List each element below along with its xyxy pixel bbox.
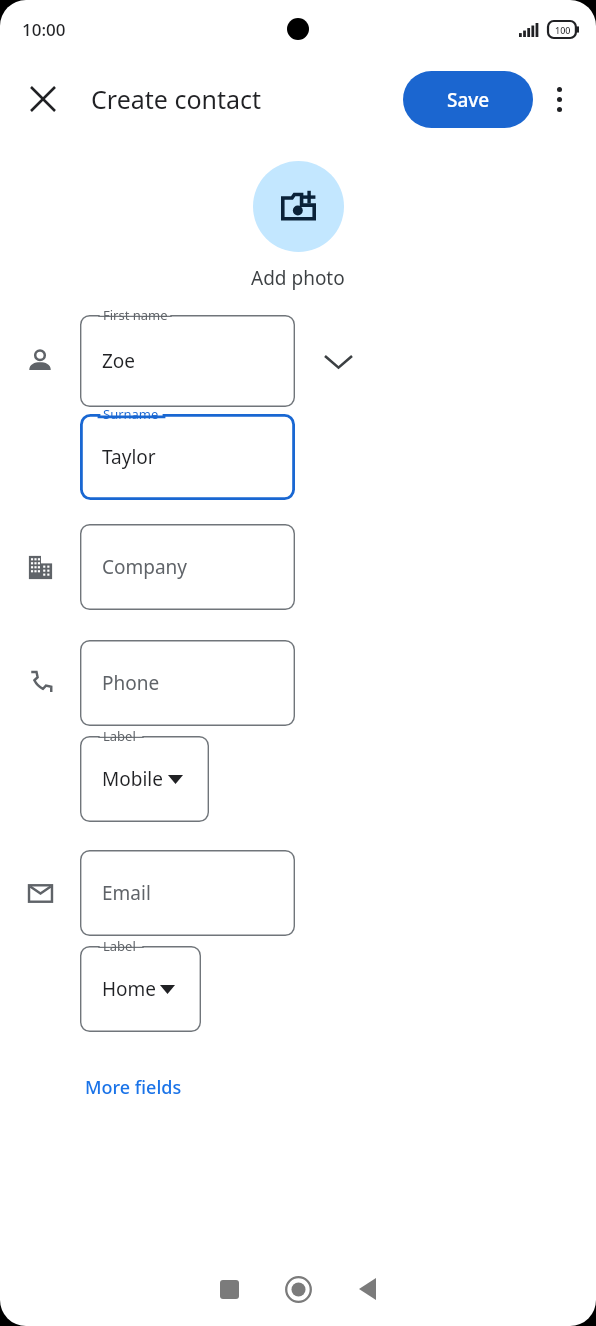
staticText: Phone bbox=[102, 670, 160, 696]
staticText: Company bbox=[102, 554, 188, 580]
button[interactable]: Save bbox=[403, 71, 533, 128]
button[interactable]: More fields bbox=[82, 1072, 185, 1103]
staticText: Create contact bbox=[91, 82, 262, 116]
button[interactable]: Home bbox=[274, 1265, 322, 1313]
button[interactable]: Add photo bbox=[253, 161, 344, 252]
staticText: Email bbox=[102, 880, 151, 906]
staticText: 100 bbox=[555, 24, 571, 36]
button[interactable]: Email bbox=[80, 850, 295, 936]
button[interactable]: More options bbox=[533, 73, 585, 125]
button[interactable]: First name bbox=[80, 315, 295, 407]
button[interactable]: Recent apps bbox=[205, 1265, 253, 1313]
button[interactable]: Surname bbox=[80, 414, 295, 500]
button[interactable]: Phone bbox=[80, 640, 295, 726]
staticText: Zoe bbox=[102, 348, 136, 374]
staticText: First name bbox=[103, 306, 168, 324]
button[interactable]: Company bbox=[80, 524, 295, 610]
staticText: Surname bbox=[103, 405, 159, 423]
staticText: Mobile bbox=[102, 766, 163, 792]
button[interactable]: Back bbox=[343, 1265, 391, 1313]
staticText: Label bbox=[103, 937, 136, 955]
staticText: 10:00 bbox=[22, 18, 66, 41]
staticText: Label bbox=[103, 727, 136, 745]
button[interactable]: Label bbox=[80, 946, 201, 1032]
staticText: Save bbox=[447, 87, 490, 113]
staticText: Add photo bbox=[251, 265, 345, 291]
staticText: Taylor bbox=[102, 444, 156, 470]
staticText: Home bbox=[102, 976, 157, 1002]
staticText: More fields bbox=[85, 1075, 182, 1100]
button[interactable]: Close bbox=[17, 73, 69, 125]
button[interactable]: Label bbox=[80, 736, 209, 822]
button[interactable]: Expand name fields bbox=[295, 315, 381, 407]
